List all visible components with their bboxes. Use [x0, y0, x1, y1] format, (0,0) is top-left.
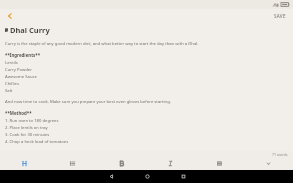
staticText: 4. Chop a heck load of tomatoes	[5, 139, 69, 145]
staticText: 2. Place lentils on tray	[5, 125, 48, 131]
staticText: 1. Run oven to 180 degrees	[5, 118, 59, 124]
staticText: And now time to cook. Make sure you prep…	[5, 99, 171, 105]
staticText: **Ingredients**	[5, 52, 41, 58]
staticText: SAVE	[274, 13, 286, 19]
staticText: Curry Powder	[5, 67, 32, 73]
staticText: Curry is the staple of any good modern d…	[5, 41, 199, 47]
button[interactable]: Bullet list	[48, 157, 97, 170]
staticText: Chillies	[5, 81, 19, 87]
button[interactable]: Back	[4, 10, 16, 22]
button[interactable]: Recent apps	[165, 170, 201, 183]
button[interactable]: Heading	[0, 157, 48, 170]
button[interactable]: Italic	[146, 157, 195, 170]
staticText: Lentils	[5, 60, 18, 66]
staticText: Dhal Curry	[10, 25, 50, 35]
button[interactable]: Insert table	[195, 157, 244, 170]
staticText: 71 words	[272, 152, 288, 157]
button[interactable]: Home	[129, 170, 165, 183]
button[interactable]: SAVE	[271, 12, 289, 20]
button[interactable]: Collapse toolbar	[244, 157, 293, 170]
staticText: 3. Cook for 30 minutes	[5, 132, 50, 138]
button[interactable]: Back	[93, 170, 129, 183]
button[interactable]: Bold	[97, 157, 146, 170]
staticText: Awesome Sauce	[5, 74, 37, 80]
staticText: Salt	[5, 88, 13, 94]
staticText: **Method**	[5, 110, 32, 116]
